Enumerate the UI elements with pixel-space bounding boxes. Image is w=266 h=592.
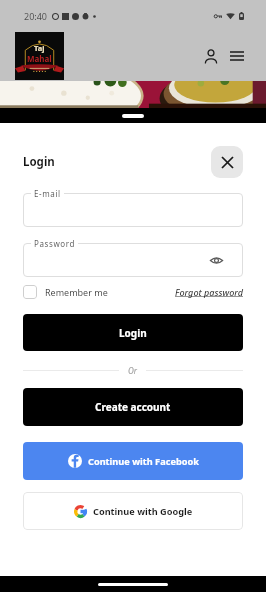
staticText: Mahal (27, 53, 52, 64)
staticText: Password (34, 238, 75, 249)
staticText: Login (119, 326, 147, 340)
button[interactable]: Create account (23, 388, 243, 426)
button[interactable]: Account (203, 48, 218, 64)
staticText: Or (128, 365, 137, 376)
button[interactable]: Continue with Facebook (23, 442, 243, 480)
button[interactable]: Forgot password (175, 286, 243, 298)
staticText: 20:40 (24, 10, 48, 22)
button[interactable] (23, 193, 243, 227)
button[interactable]: Close (211, 146, 243, 178)
button[interactable]: Show password (207, 251, 225, 269)
button[interactable] (23, 243, 243, 277)
button[interactable]: Remember me (23, 285, 108, 299)
button[interactable]: Continue with Google (23, 492, 243, 530)
staticText: Remember me (45, 286, 108, 298)
staticText: Taj (34, 43, 45, 53)
button[interactable]: Taj Mahal logo (15, 32, 64, 80)
staticText: Login (23, 154, 55, 170)
staticText: E-mail (34, 188, 61, 199)
staticText: Create account (95, 400, 171, 414)
staticText: Continue with Google (93, 505, 193, 518)
button[interactable]: Menu (229, 48, 244, 64)
button[interactable]: Login (23, 314, 243, 351)
staticText: Continue with Facebook (88, 455, 199, 468)
